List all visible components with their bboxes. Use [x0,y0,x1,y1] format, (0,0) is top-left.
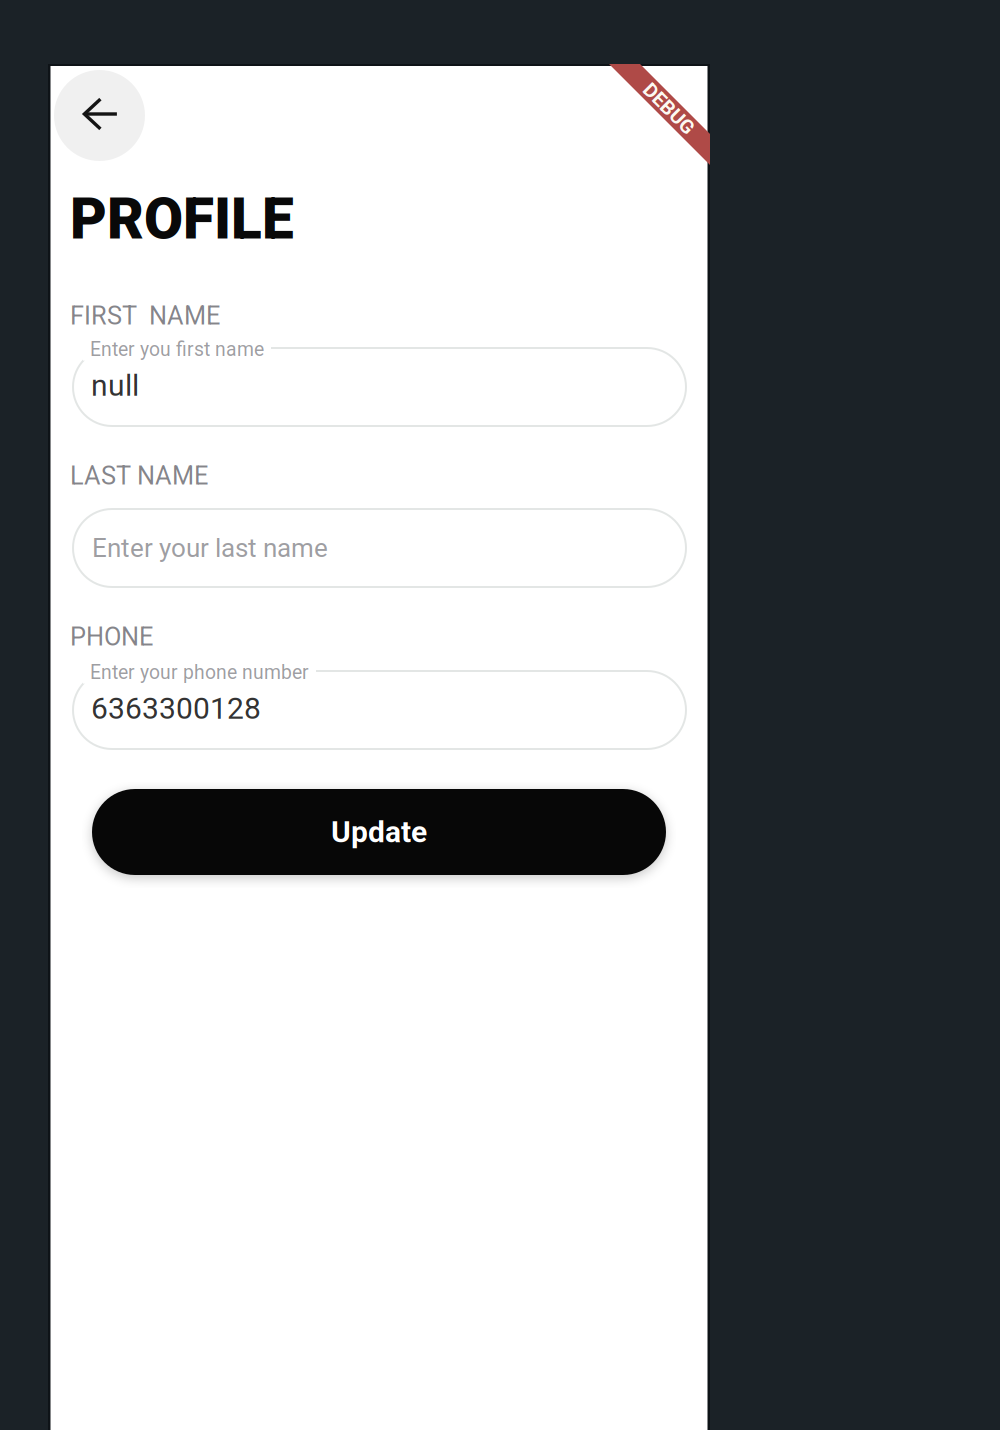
staticText: Update [331,814,427,850]
button[interactable]: 6363300128 [73,671,686,749]
staticText: FIRST NAME [70,301,220,331]
button[interactable]: Update [92,789,666,875]
button[interactable]: Enter your last name [73,509,686,587]
staticText: Enter your phone number [90,661,309,684]
staticText: LAST NAME [70,461,208,491]
button[interactable]: null [73,348,686,426]
staticText: DEBUG [637,97,701,120]
button[interactable]: Back [54,70,145,161]
staticText: 6363300128 [91,691,261,726]
staticText: Enter your last name [92,533,328,563]
staticText: PHONE [70,622,153,652]
staticText: Enter you first name [90,338,264,361]
staticText: null [91,368,139,403]
staticText: PROFILE [70,186,294,252]
